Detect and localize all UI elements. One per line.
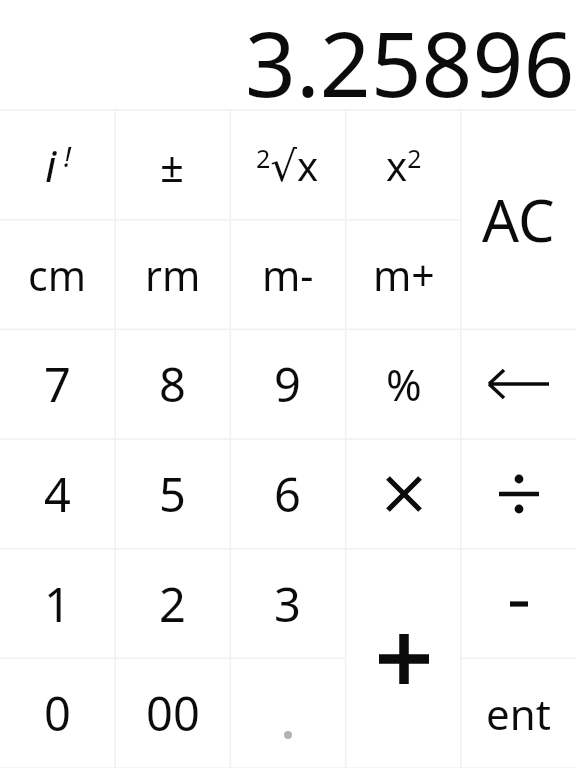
staticText: % (386, 355, 422, 414)
button[interactable]: AC (461, 110, 576, 329)
staticText: cm (28, 247, 87, 303)
button[interactable]: Divide (461, 439, 576, 549)
button[interactable]: ± (115, 110, 230, 220)
staticText: 8 (159, 352, 186, 416)
button[interactable]: m+ (346, 220, 461, 330)
button[interactable]: 2√x (230, 110, 345, 220)
button[interactable]: Decimal point (230, 658, 345, 768)
button[interactable]: Minus (461, 549, 576, 659)
staticText: 2√x (256, 138, 319, 192)
staticText: 3 (274, 572, 301, 636)
button[interactable]: cm (0, 220, 115, 330)
button[interactable]: 5 (115, 439, 230, 549)
staticText: ± (160, 137, 185, 194)
staticText: 00 (146, 681, 200, 745)
staticText: 1 (44, 572, 71, 636)
button[interactable]: 2 (115, 549, 230, 659)
staticText: 3.25896 (245, 2, 575, 112)
button[interactable]: 3 (230, 549, 345, 659)
staticText: 5 (159, 462, 186, 526)
button[interactable]: 00 (115, 658, 230, 768)
button[interactable]: Backspace (461, 329, 576, 439)
button[interactable]: Multiply (346, 439, 461, 549)
staticText: AC (482, 180, 555, 259)
button[interactable]: 4 (0, 439, 115, 549)
staticText: 6 (274, 462, 301, 526)
button[interactable]: % (346, 329, 461, 439)
staticText: rm (145, 247, 201, 303)
button[interactable]: 1 (0, 549, 115, 659)
staticText: 9 (274, 352, 301, 416)
button[interactable]: 6 (230, 439, 345, 549)
button[interactable]: ent (461, 658, 576, 768)
staticText: x2 (386, 138, 422, 192)
staticText: 2 (159, 572, 186, 636)
staticText: 7 (44, 352, 71, 416)
staticText: m+ (373, 247, 435, 303)
button[interactable]: 9 (230, 329, 345, 439)
button[interactable]: m- (230, 220, 345, 330)
button[interactable]: x2 (346, 110, 461, 220)
staticText: m- (262, 247, 314, 303)
staticText: 4 (44, 462, 71, 526)
button[interactable]: Plus (346, 549, 461, 768)
staticText: 0 (44, 681, 71, 745)
button[interactable]: 0 (0, 658, 115, 768)
staticText: i ! (45, 135, 71, 195)
staticText: ent (486, 685, 551, 742)
button[interactable]: 7 (0, 329, 115, 439)
button[interactable]: i ! (0, 110, 115, 220)
button[interactable]: 8 (115, 329, 230, 439)
button[interactable]: rm (115, 220, 230, 330)
